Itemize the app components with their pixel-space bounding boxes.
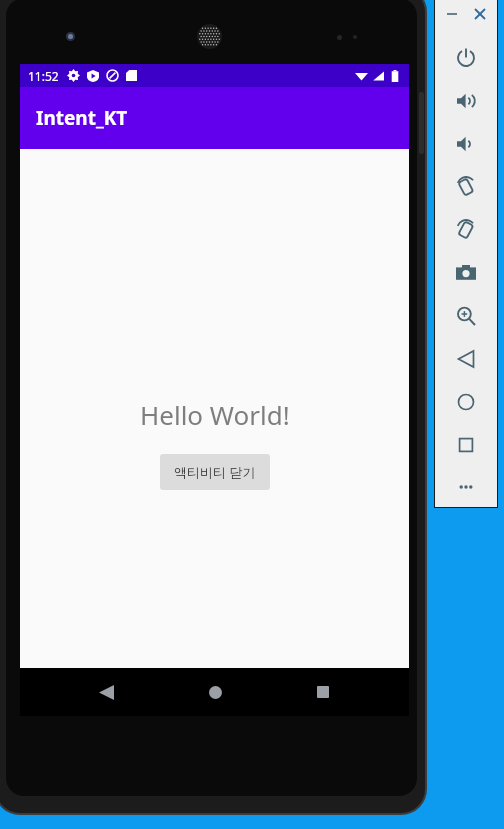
button[interactable]: Close (470, 4, 490, 24)
button[interactable]: Volume down (435, 122, 497, 165)
button[interactable]: More (435, 466, 497, 508)
button[interactable]: Back (83, 669, 129, 715)
button[interactable]: Screenshot (435, 251, 497, 294)
button[interactable]: Power (435, 36, 497, 79)
button[interactable]: Recents (300, 669, 346, 715)
button[interactable]: Rotate right (435, 208, 497, 251)
button[interactable]: Home (192, 669, 238, 715)
button[interactable]: Home (435, 380, 497, 423)
button[interactable]: 액티비티 닫기 (160, 454, 270, 490)
button[interactable]: Zoom (435, 294, 497, 337)
staticText: Hello World! (140, 397, 290, 432)
staticText: 액티비티 닫기 (174, 463, 256, 481)
button[interactable]: Rotate left (435, 165, 497, 208)
staticText: Intent_KT (36, 105, 128, 131)
button[interactable]: Overview (435, 423, 497, 466)
button[interactable]: Minimize (442, 4, 462, 24)
staticText: 11:52 (28, 68, 59, 84)
button[interactable]: Back (435, 337, 497, 380)
button[interactable]: Volume up (435, 79, 497, 122)
